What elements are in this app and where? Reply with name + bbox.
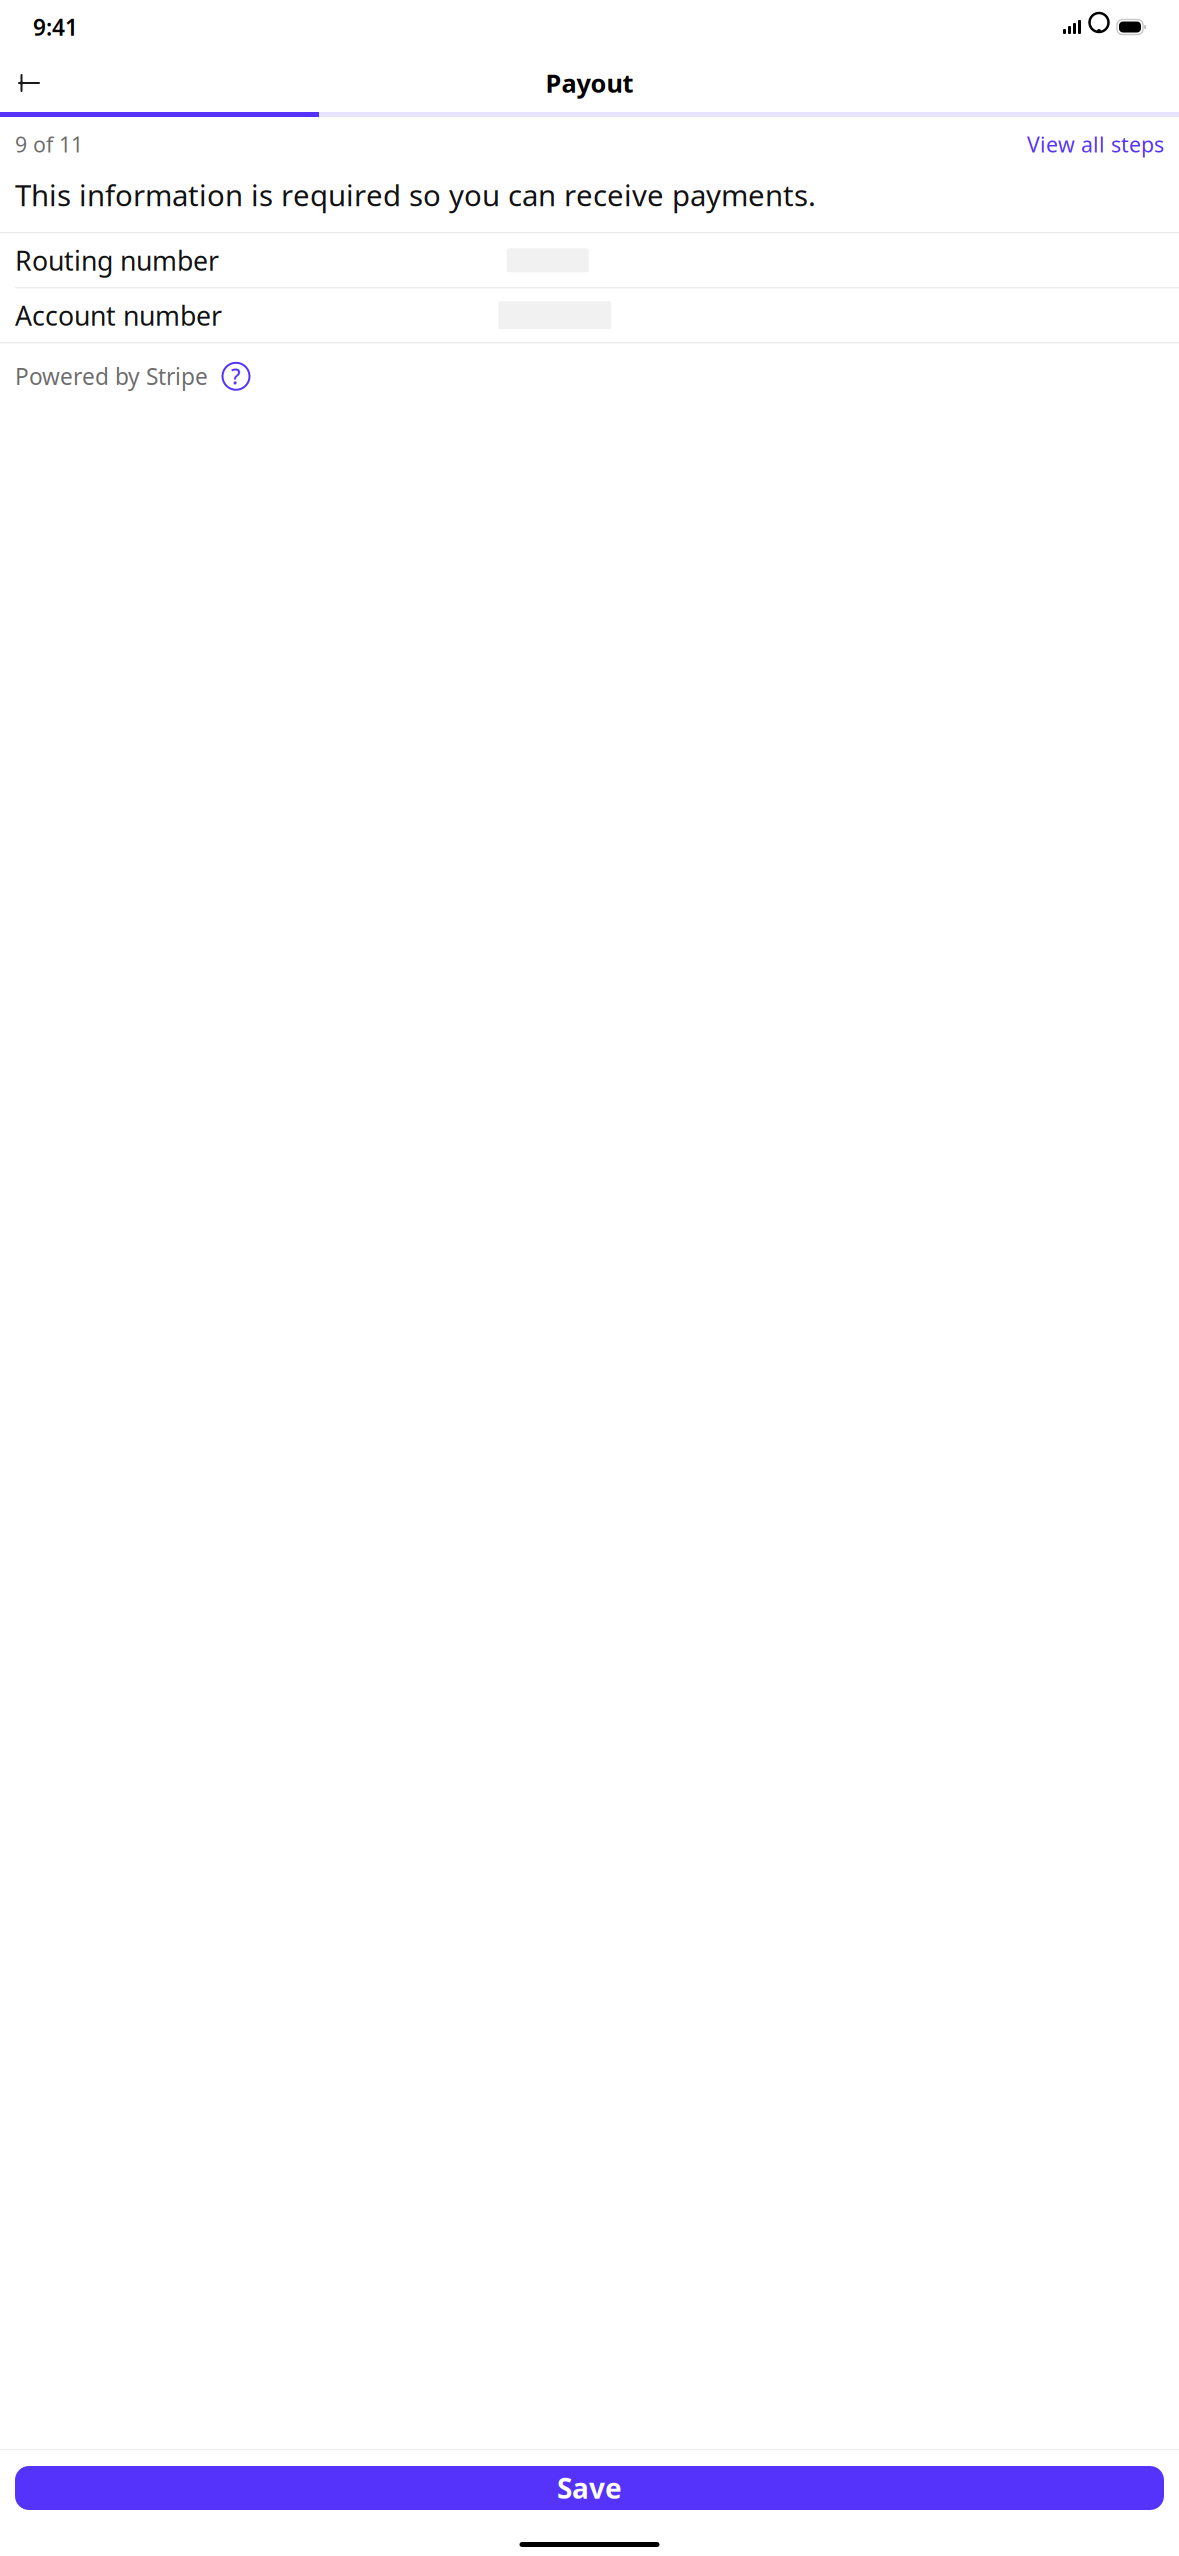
- button[interactable]: Routing number: [0, 233, 1179, 287]
- staticText: View all steps: [1027, 130, 1164, 158]
- staticText: This information is required so you can …: [15, 175, 816, 214]
- button[interactable]: Account number: [0, 288, 1179, 342]
- button[interactable]: Save: [15, 2466, 1164, 2510]
- staticText: ?: [231, 362, 241, 390]
- staticText: 9:41: [33, 12, 78, 42]
- staticText: Powered by Stripe: [15, 361, 208, 391]
- button[interactable]: Back: [7, 61, 51, 105]
- staticText: Save: [557, 2469, 622, 2507]
- button[interactable]: Help about Stripe: [220, 360, 252, 392]
- staticText: Account number: [15, 298, 222, 333]
- staticText: Routing number: [15, 243, 219, 278]
- button[interactable]: View all steps: [1027, 130, 1164, 158]
- staticText: Payout: [545, 66, 633, 100]
- staticText: 9 of 11: [15, 130, 83, 158]
